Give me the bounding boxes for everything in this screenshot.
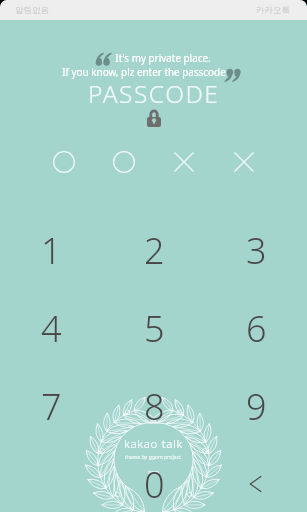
staticText: 2: [144, 226, 165, 275]
button[interactable]: [0, 445, 103, 512]
button[interactable]: 1: [0, 211, 103, 289]
staticText: 카카오톡: [256, 5, 290, 16]
button[interactable]: 9: [205, 367, 307, 445]
staticText: 5: [144, 304, 165, 353]
staticText: It's my private place.: [115, 51, 211, 64]
button[interactable]: Backspace: [205, 445, 307, 512]
staticText: 7: [41, 382, 62, 431]
button[interactable]: 4: [0, 289, 103, 367]
staticText: 1: [41, 226, 62, 275]
button[interactable]: 2: [103, 211, 205, 289]
staticText: PASSCODE: [88, 77, 220, 110]
staticText: If you know, plz enter the passcode: [62, 65, 226, 78]
staticText: 6: [246, 304, 267, 353]
staticText: 3: [246, 226, 267, 275]
button[interactable]: 3: [205, 211, 307, 289]
button[interactable]: 5: [103, 289, 205, 367]
staticText: 0: [144, 460, 165, 509]
button[interactable]: 8: [103, 367, 205, 445]
staticText: xoxo: [148, 469, 160, 476]
staticText: 알림없음: [15, 5, 49, 16]
staticText: 9: [246, 382, 267, 431]
button[interactable]: 0: [103, 445, 205, 512]
staticText: theme by ggom project: [125, 454, 182, 461]
staticText: 4: [41, 304, 62, 353]
button[interactable]: 7: [0, 367, 103, 445]
button[interactable]: 6: [205, 289, 307, 367]
staticText: 8: [144, 382, 165, 431]
other: Backspace: [244, 472, 268, 496]
staticText: kakao talk: [124, 436, 183, 452]
